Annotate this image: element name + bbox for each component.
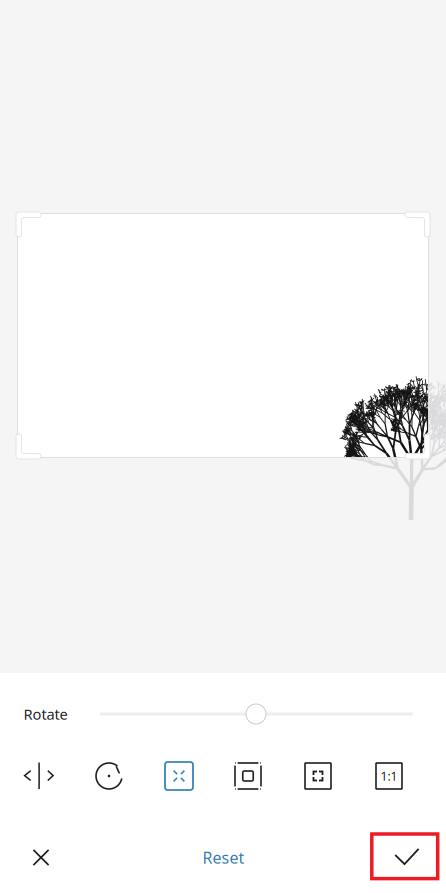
- staticText: 1:1: [380, 768, 397, 784]
- button[interactable]: Cancel: [12, 833, 70, 881]
- staticText: Reset: [203, 847, 245, 868]
- button[interactable]: Flip horizontal: [11, 753, 67, 799]
- button[interactable]: Fit to frame: [220, 753, 276, 799]
- button[interactable]: Fill frame: [290, 753, 346, 799]
- staticText: Rotate: [24, 704, 68, 724]
- button[interactable]: Reset: [179, 833, 269, 881]
- button[interactable]: Square aspect ratio: [361, 753, 417, 799]
- button[interactable]: Freeform crop: [151, 753, 207, 799]
- button[interactable]: Rotate: [81, 753, 137, 799]
- button[interactable]: Done: [378, 832, 436, 880]
